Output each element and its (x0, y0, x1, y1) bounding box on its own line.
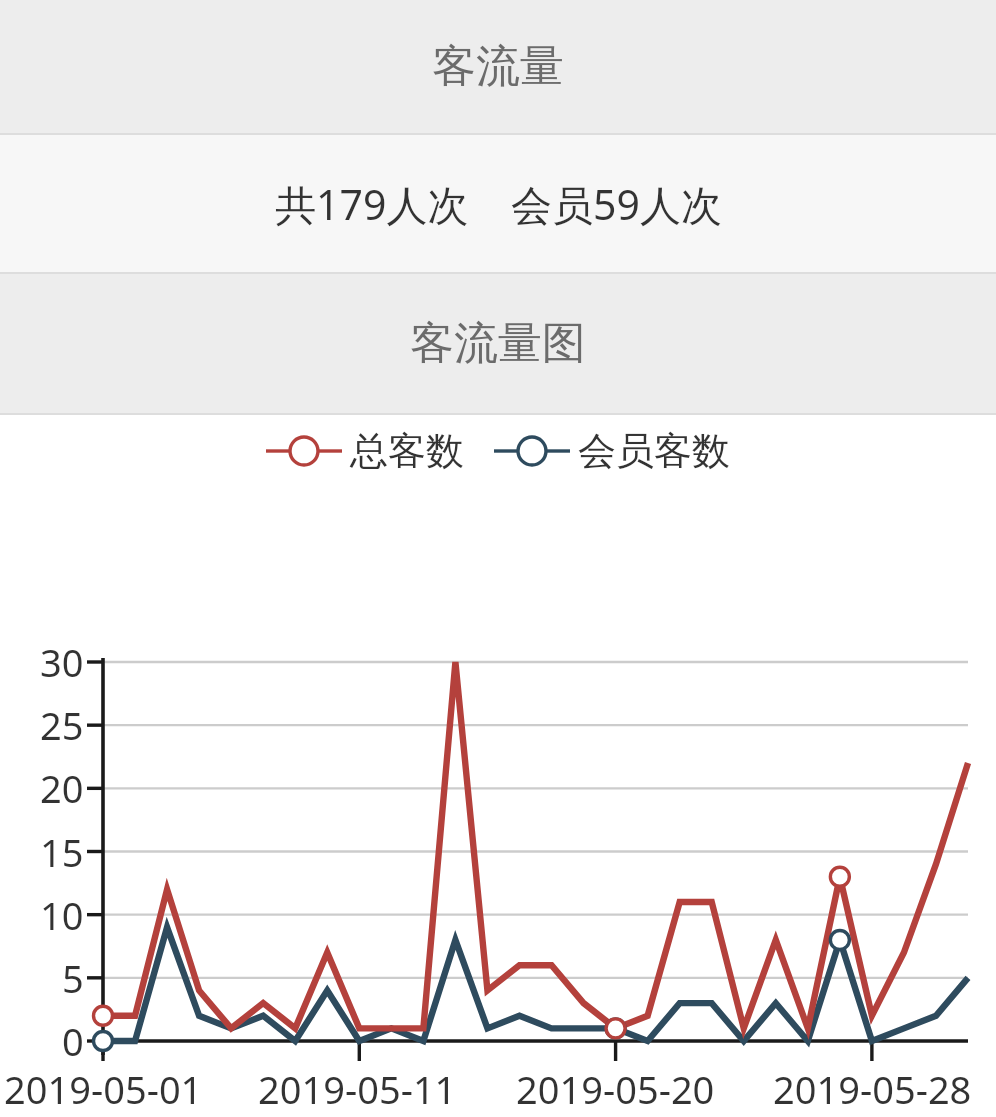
staticText: 客流量图 (410, 316, 586, 371)
staticText: 2019-05-20 (516, 1063, 715, 1115)
staticText: 5 (62, 952, 84, 1004)
button[interactable]: 总客数 (266, 427, 464, 475)
staticText: 客流量 (432, 39, 564, 94)
staticText: 15 (40, 826, 84, 878)
staticText: 2019-05-11 (258, 1063, 457, 1115)
staticText: 会员客数 (578, 427, 730, 475)
staticText: 10 (40, 889, 84, 941)
staticText: 30 (40, 636, 84, 688)
button[interactable]: 客流量图 (0, 274, 996, 413)
button[interactable]: 客流量 (0, 0, 996, 133)
other: 客流量折线图 (0, 487, 996, 1117)
staticText: 20 (40, 762, 84, 814)
staticText: 总客数 (350, 427, 464, 475)
button[interactable]: 共179人次 会员59人次 (0, 135, 996, 272)
button[interactable]: 会员客数 (494, 427, 730, 475)
staticText: 25 (40, 699, 84, 751)
staticText: 0 (62, 1015, 84, 1067)
staticText: 2019-05-01 (4, 1063, 203, 1115)
staticText: 共179人次 会员59人次 (275, 176, 722, 232)
staticText: 2019-05-28 (773, 1063, 972, 1115)
